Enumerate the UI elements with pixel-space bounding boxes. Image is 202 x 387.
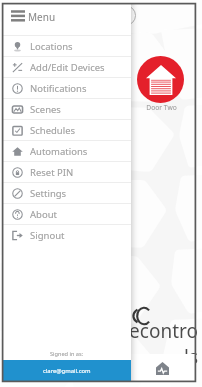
button[interactable]: Locations	[3, 36, 131, 56]
staticText: Signed in as:	[50, 350, 84, 358]
staticText: Schedules	[30, 124, 76, 137]
staticText: clare@gmail.com	[43, 367, 91, 375]
button[interactable]: Reset PIN	[3, 162, 131, 182]
button[interactable]: Door Two	[137, 56, 184, 103]
staticText: Scenes	[30, 103, 61, 116]
staticText: Door Two	[136, 103, 187, 112]
button[interactable]: Signout	[3, 225, 131, 245]
button[interactable]: clare@gmail.com	[3, 360, 131, 381]
button[interactable]: Menu	[3, 4, 131, 35]
staticText: Locations	[30, 40, 73, 53]
button[interactable]: Notifications	[3, 78, 131, 98]
button[interactable]: Schedules	[3, 120, 131, 140]
staticText: Add/Edit Devices	[30, 61, 105, 74]
staticText: securecontrols	[78, 318, 198, 370]
staticText: Notifications	[30, 82, 87, 95]
staticText: Signout	[30, 229, 65, 242]
button[interactable]: Settings	[3, 183, 131, 203]
button[interactable]: About	[3, 204, 131, 224]
button[interactable]: Scenes	[3, 99, 131, 119]
staticText: About	[30, 208, 57, 221]
button[interactable]: Add/Edit Devices	[3, 57, 131, 77]
button[interactable]: Home	[151, 357, 173, 379]
staticText: Menu	[28, 10, 56, 24]
button[interactable]: Automations	[3, 141, 131, 161]
staticText: Reset PIN	[30, 166, 74, 179]
staticText: Settings	[30, 187, 67, 200]
staticText: Automations	[30, 145, 88, 158]
